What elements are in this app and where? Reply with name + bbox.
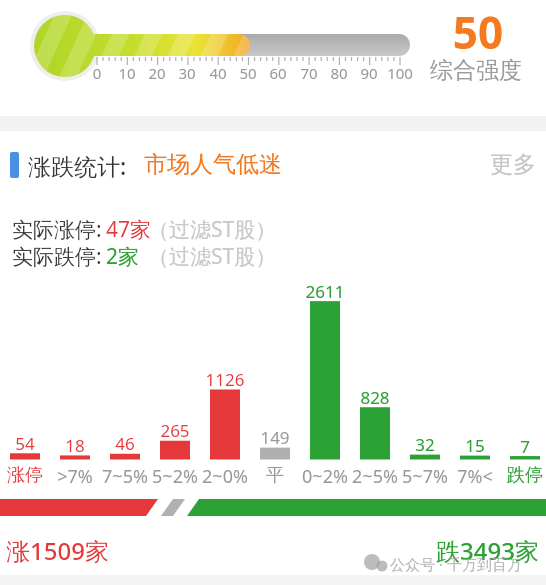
staticText: 涨1509家 bbox=[6, 534, 109, 567]
staticText: 5~7% bbox=[400, 464, 450, 489]
staticText: 涨停 bbox=[0, 464, 50, 487]
staticText: 2611 bbox=[300, 280, 350, 303]
staticText: 15 bbox=[450, 434, 500, 457]
staticText: 0~2% bbox=[300, 464, 350, 489]
staticText: 1126 bbox=[200, 368, 250, 391]
staticText: 综合强度 bbox=[430, 56, 522, 85]
staticText: 市场人气低迷 bbox=[144, 150, 282, 179]
staticText: 54 bbox=[0, 432, 50, 455]
staticText: 70 bbox=[289, 63, 329, 83]
staticText: 跌3493家 bbox=[436, 534, 539, 567]
staticText: 47家 bbox=[106, 215, 152, 244]
staticText: （过滤ST股） bbox=[148, 215, 277, 244]
staticText: 2家 bbox=[106, 242, 140, 271]
staticText: 265 bbox=[150, 419, 200, 442]
staticText: 50 bbox=[228, 63, 268, 83]
staticText: 2~0% bbox=[200, 464, 250, 489]
staticText: 实际跌停: bbox=[12, 242, 102, 271]
staticText: 46 bbox=[100, 432, 150, 455]
staticText: 7~5% bbox=[100, 464, 150, 489]
staticText: 90 bbox=[349, 63, 389, 83]
staticText: 7%< bbox=[450, 464, 500, 489]
staticText: 60 bbox=[258, 63, 298, 83]
staticText: 实际涨停: bbox=[12, 215, 102, 244]
button[interactable]: 更多 bbox=[490, 150, 536, 179]
staticText: 100 bbox=[380, 63, 420, 83]
staticText: 0 bbox=[77, 63, 117, 83]
staticText: （过滤ST股） bbox=[148, 242, 277, 271]
staticText: >7% bbox=[50, 464, 100, 489]
staticText: 公众号 · 千万到百万 bbox=[390, 554, 522, 574]
staticText: 828 bbox=[350, 386, 400, 409]
staticText: 30 bbox=[167, 63, 207, 83]
staticText: 7 bbox=[500, 435, 546, 458]
staticText: 18 bbox=[50, 434, 100, 457]
staticText: 40 bbox=[198, 63, 238, 83]
staticText: 50 bbox=[432, 2, 524, 62]
staticText: 10 bbox=[107, 63, 147, 83]
staticText: 149 bbox=[250, 426, 300, 449]
staticText: 32 bbox=[400, 433, 450, 456]
staticText: 涨跌统计: bbox=[28, 150, 127, 181]
staticText: 跌停 bbox=[500, 464, 546, 487]
staticText: 5~2% bbox=[150, 464, 200, 489]
staticText: 平 bbox=[250, 464, 300, 487]
staticText: 80 bbox=[319, 63, 359, 83]
staticText: 20 bbox=[137, 63, 177, 83]
staticText: 2~5% bbox=[350, 464, 400, 489]
